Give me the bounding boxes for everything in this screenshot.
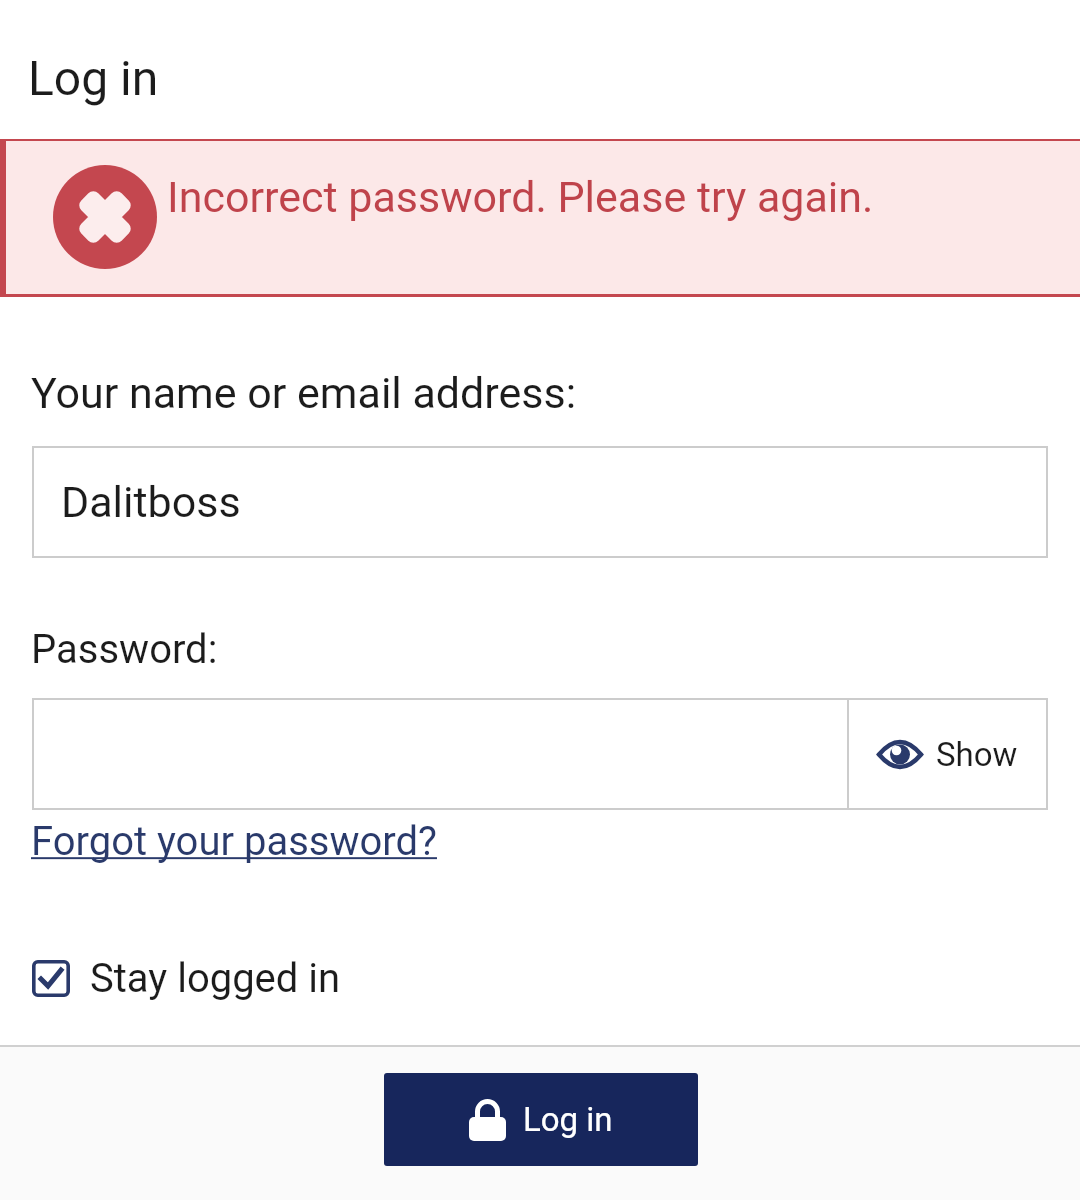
staticText: Your name or email address: — [31, 368, 577, 418]
button[interactable]: Show — [849, 698, 1048, 810]
button[interactable]: Dalitboss — [32, 446, 1048, 558]
staticText: Incorrect password. Please try again. — [167, 172, 874, 222]
staticText: Dalitboss — [61, 477, 241, 527]
button[interactable]: Stay logged in — [32, 945, 341, 1011]
button[interactable]: Show — [32, 698, 1048, 810]
staticText: Show — [936, 735, 1018, 774]
staticText: Password: — [31, 626, 218, 673]
staticText: Log in — [28, 50, 159, 106]
staticText: Log in — [523, 1100, 613, 1139]
staticText: Stay logged in — [90, 955, 341, 1002]
button[interactable]: Log in — [384, 1073, 698, 1166]
